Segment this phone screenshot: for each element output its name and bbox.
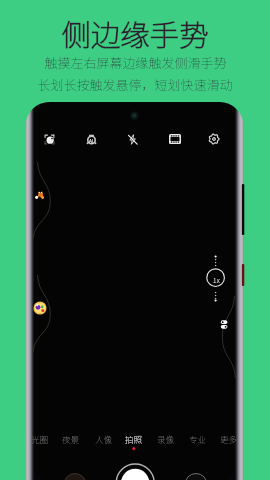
- button[interactable]: App shortcut: [219, 319, 229, 330]
- staticText: 更多: [220, 433, 238, 445]
- staticText: 夜景: [62, 433, 80, 445]
- staticText: 拍照: [125, 433, 143, 445]
- staticText: AI: [89, 137, 94, 144]
- button[interactable]: AI scene: [40, 130, 58, 148]
- staticText: 触摸左右屏幕边缘触发侧滑手势: [44, 53, 227, 72]
- staticText: 长划长按触发悬停，短划快速滑动: [37, 75, 233, 94]
- staticText: 录像: [157, 433, 175, 445]
- button[interactable]: 录像: [152, 432, 180, 446]
- button[interactable]: 拍照: [120, 432, 148, 446]
- button[interactable]: Zoom 1x: [207, 271, 225, 289]
- button[interactable]: 更多: [215, 432, 243, 446]
- staticText: 专业: [189, 433, 207, 445]
- button[interactable]: Aspect ratio: [166, 130, 184, 148]
- button[interactable]: Settings: [205, 130, 223, 148]
- button[interactable]: App shortcut: [34, 188, 46, 200]
- staticText: 人像: [95, 433, 113, 445]
- button[interactable]: 人像: [90, 432, 118, 446]
- button[interactable]: 专业: [184, 432, 212, 446]
- staticText: 光圈: [31, 433, 49, 445]
- button[interactable]: 夜景: [57, 432, 85, 446]
- button[interactable]: Flash off: [123, 130, 141, 148]
- staticText: 侧边缘手势: [61, 12, 209, 55]
- button[interactable]: App shortcut: [33, 301, 47, 315]
- button[interactable]: AI: [82, 130, 100, 148]
- button[interactable]: 光圈: [26, 432, 54, 446]
- staticText: 1x: [213, 275, 220, 285]
